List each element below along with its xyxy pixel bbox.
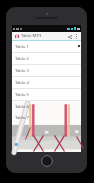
button[interactable]: Tablo 4 bbox=[12, 77, 81, 88]
button[interactable]: Tablo 2 bbox=[12, 53, 81, 64]
staticText: Tablo MP3 bbox=[21, 33, 42, 39]
button[interactable]: Tablo 1 bbox=[12, 41, 81, 52]
staticText: Tablo 7 bbox=[15, 115, 30, 121]
staticText: Tablo 4 bbox=[15, 80, 30, 86]
button[interactable]: App logo bbox=[14, 33, 20, 39]
staticText: Tablo 1 bbox=[15, 44, 30, 50]
staticText: Tablo 5 bbox=[15, 92, 30, 98]
button[interactable]: More options bbox=[73, 33, 79, 39]
staticText: Tablo 6 bbox=[15, 104, 30, 110]
button[interactable]: Tablo 5 bbox=[12, 89, 81, 100]
button[interactable]: Share bbox=[66, 33, 73, 40]
staticText: Tablo 3 bbox=[15, 68, 30, 74]
staticText: Tablo 2 bbox=[15, 56, 30, 62]
button[interactable]: Tablo 6 bbox=[12, 101, 81, 112]
button[interactable]: Tablo 3 bbox=[12, 65, 81, 76]
button[interactable]: Tablo 7 bbox=[12, 112, 81, 123]
